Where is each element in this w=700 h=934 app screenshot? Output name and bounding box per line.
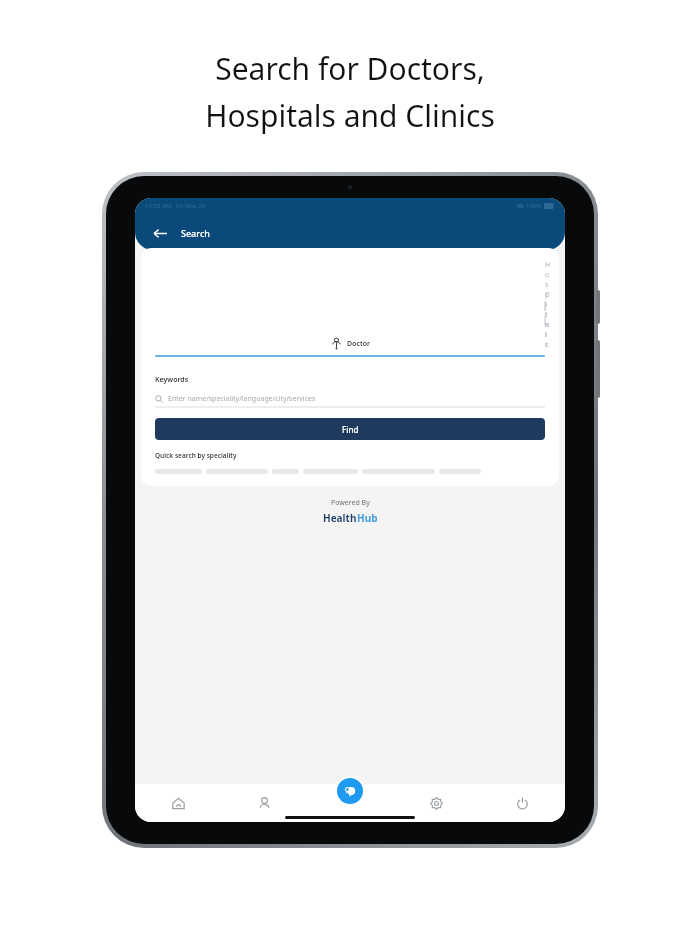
- button[interactable]: Enter name/speciality/language/city/serv…: [155, 391, 545, 407]
- staticText: Keywords: [155, 375, 189, 385]
- staticText: Find: [342, 424, 359, 435]
- button[interactable]: Back: [149, 222, 171, 244]
- staticText: 11:52 AM Fri May 20: [145, 202, 206, 210]
- staticText: Enter name/speciality/language/city/serv…: [168, 394, 316, 404]
- staticText: Doctor: [347, 339, 371, 349]
- button[interactable]: Power: [479, 784, 565, 822]
- staticText: Health: [323, 511, 357, 525]
- button[interactable]: ENT: [272, 469, 299, 474]
- button[interactable]: Home: [135, 784, 221, 822]
- staticText: Hub: [357, 511, 378, 525]
- staticText: Hospitals and Clinics: [205, 95, 495, 136]
- button[interactable]: Settings: [393, 784, 479, 822]
- button[interactable]: Find: [155, 418, 545, 440]
- staticText: 100%: [526, 202, 542, 210]
- button[interactable]: Profile: [221, 784, 307, 822]
- button[interactable]: Doctor: [155, 337, 545, 357]
- staticText: Search for Doctors,: [215, 48, 485, 89]
- staticText: Quick search by speciality: [155, 451, 237, 460]
- staticText: Powered By: [331, 498, 370, 508]
- staticText: Search: [181, 227, 210, 239]
- button[interactable]: Chat: [337, 778, 363, 804]
